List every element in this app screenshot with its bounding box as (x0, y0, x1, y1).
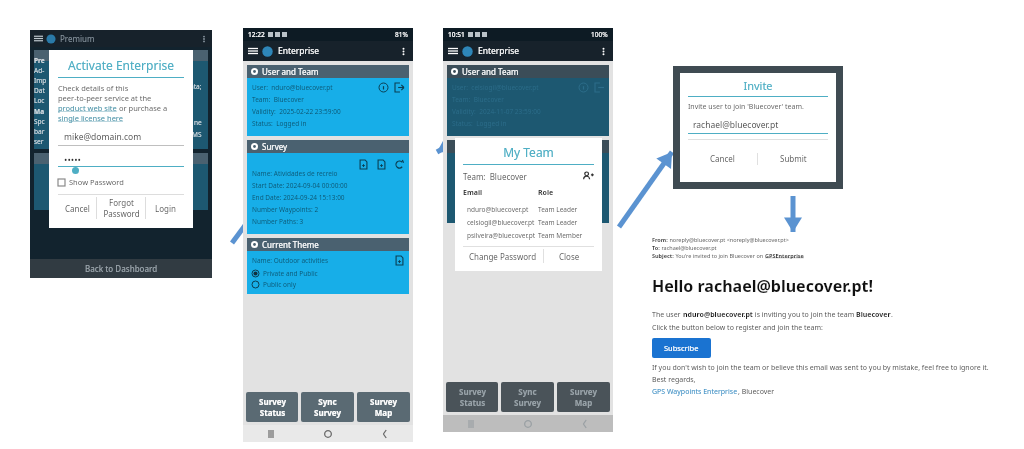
staticText: Imp (34, 76, 47, 85)
staticText: Invite (688, 78, 828, 93)
button[interactable]: Cancel (58, 195, 96, 221)
button[interactable]: Subscribe (652, 338, 711, 358)
button[interactable]: Survey Map (357, 392, 410, 422)
button[interactable]: Submit (758, 140, 828, 177)
button[interactable]: Forgot Password (97, 195, 145, 221)
button[interactable]: single license here (58, 113, 124, 123)
staticText: Subscribe (664, 343, 699, 353)
staticText: Pre (34, 56, 45, 65)
staticText: Team Leader (538, 218, 594, 227)
staticText: Team: Bluecover (463, 171, 527, 182)
staticText: . (891, 310, 893, 320)
button[interactable]: Change Password (463, 247, 543, 265)
button[interactable]: Logout (395, 83, 404, 92)
button[interactable]: Survey Status (446, 382, 498, 412)
staticText: Team: Bluecover (452, 95, 504, 104)
staticText: Current Theme (262, 239, 319, 250)
staticText: To: (652, 244, 660, 251)
other: Home (524, 420, 532, 428)
button[interactable]: Login (146, 195, 184, 221)
staticText: Ma (34, 107, 45, 116)
other: Recents (267, 430, 275, 438)
staticText: 100% (591, 30, 608, 39)
staticText: Status: Logged in (252, 119, 307, 128)
button[interactable]: Cancel (688, 140, 757, 177)
other: Back (381, 430, 389, 438)
button[interactable]: Info (379, 83, 388, 92)
other: More options (399, 47, 408, 56)
staticText: Subject: (652, 252, 674, 259)
other: Menu (448, 46, 458, 56)
staticText: ser (34, 137, 44, 146)
button[interactable]: Sync Survey (501, 382, 554, 412)
staticText: Team: Bluecover (252, 95, 304, 104)
button[interactable]: psilveira@bluecover.pt (463, 231, 594, 240)
staticText: Team Leader (538, 205, 594, 214)
staticText: Validity: 2024-11-07 23:59:00 (452, 107, 541, 116)
button[interactable]: GPS Waypoints Enterprise (652, 387, 738, 397)
staticText: ata; (190, 82, 202, 91)
button[interactable]: product web site (58, 103, 117, 113)
button[interactable]: Public only (252, 280, 297, 289)
staticText: nduro@bluecover.pt (683, 310, 753, 320)
staticText: Premium (60, 33, 95, 44)
staticText: Number Waypoints: 2 (252, 205, 319, 214)
staticText: Spc (34, 117, 45, 126)
other: Home (324, 430, 332, 438)
button[interactable]: nduro@bluecover.pt (463, 205, 594, 214)
staticText: My Team (463, 144, 594, 160)
staticText: Survey Status (459, 386, 486, 408)
staticText: nduro@bluecover.pt (467, 205, 538, 214)
staticText: 10:51 (448, 30, 465, 39)
staticText: If you don't wish to join the team or be… (652, 363, 989, 373)
staticText: , Bluecover (738, 387, 775, 397)
staticText: peer-to-peer service at the (58, 93, 152, 103)
staticText: Hello rachael@bluecover.pt! (652, 275, 873, 297)
button[interactable]: Sync (395, 160, 404, 169)
staticText: Survey Map (370, 396, 397, 418)
staticText: Sync Survey (314, 396, 341, 418)
other: Back (581, 420, 589, 428)
staticText: Loc (34, 96, 45, 105)
staticText: Survey Status (259, 396, 286, 418)
button[interactable]: celsiogil@bluecover.pt (463, 218, 594, 227)
button[interactable]: Survey Map (557, 382, 610, 412)
staticText: Sync Survey (514, 386, 541, 408)
button[interactable]: Theme document (395, 256, 404, 265)
staticText: celsiogil@bluecover.pt (467, 218, 538, 227)
staticText: Private and Public (263, 269, 318, 278)
button[interactable]: Show Password (58, 177, 124, 187)
staticText: Name: Atividades de recreio (252, 169, 338, 178)
staticText: Validity: 2025-02-22 23:59:00 (252, 107, 341, 116)
staticText: rachael@bluecover.pt (693, 119, 779, 131)
button[interactable]: Close (544, 247, 594, 265)
button[interactable]: GPSEnterprise (765, 252, 804, 259)
button[interactable]: Add user (583, 171, 594, 182)
button[interactable]: Survey Status (246, 392, 298, 422)
staticText: Dat (34, 86, 45, 95)
staticText: Bluecover (856, 310, 891, 320)
button[interactable]: New survey (359, 160, 368, 169)
button[interactable]: Private and Public (252, 269, 318, 278)
staticText: Name: Outdoor activities (252, 256, 329, 265)
other: Recents (467, 420, 475, 428)
staticText: Email (463, 188, 538, 198)
button[interactable]: Back to Dashboard (30, 259, 212, 278)
other: More options (599, 47, 608, 56)
staticText: 81% (395, 30, 408, 39)
staticText: Activate Enterprise (58, 57, 184, 73)
staticText: From: (652, 236, 668, 243)
staticText: Login (155, 203, 176, 214)
staticText: Change Password (469, 251, 537, 262)
staticText: noreply@bluecover.pt <noreply@bluecover.… (668, 236, 789, 243)
staticText: Invite user to join 'Bluecover' team. (688, 102, 804, 112)
staticText: Forgot Password (103, 197, 140, 219)
button[interactable]: Edit survey (377, 160, 386, 169)
staticText: ••••• (64, 153, 81, 165)
staticText: mike@domain.com (64, 131, 142, 143)
staticText: User: nduro@bluecover.pt (252, 83, 333, 92)
staticText: Enterprise (278, 45, 320, 57)
button[interactable]: Sync Survey (301, 392, 354, 422)
staticText: User and Team (462, 66, 519, 77)
staticText: Ad- (34, 66, 45, 75)
